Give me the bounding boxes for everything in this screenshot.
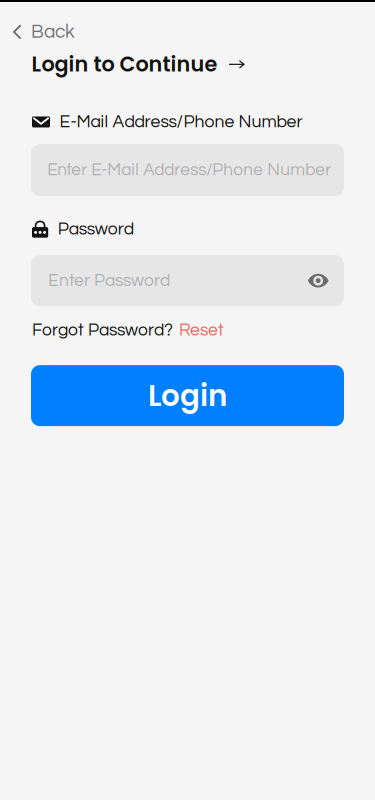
- staticText: Reset: [179, 321, 224, 339]
- staticText: Back: [31, 22, 75, 42]
- staticText: Password: [58, 220, 134, 238]
- button[interactable]: Login: [31, 365, 344, 426]
- button[interactable]: Show password: [302, 267, 334, 294]
- staticText: Forgot Password?: [32, 321, 173, 339]
- button[interactable]: Reset: [179, 321, 224, 339]
- staticText: Login: [148, 375, 227, 416]
- staticText: E-Mail Address/Phone Number: [59, 113, 302, 131]
- staticText: Enter Password: [48, 272, 170, 290]
- staticText: Login to Continue: [31, 50, 217, 79]
- staticText: Enter E-Mail Address/Phone Number: [47, 161, 331, 179]
- button[interactable]: Back: [0, 17, 87, 47]
